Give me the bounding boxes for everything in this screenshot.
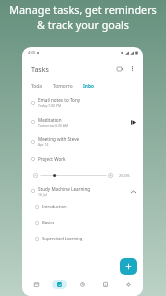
button[interactable]: Supervised Learning: [22, 231, 143, 247]
staticText: Today 7:00 PM: [38, 103, 62, 108]
staticText: Meeting with Steve: [38, 136, 80, 142]
staticText: 4:05: [28, 50, 36, 55]
staticText: 16 Jul: [38, 192, 47, 197]
button[interactable]: Start timer: [128, 117, 139, 128]
button[interactable]: Study Machine Learning: [22, 183, 143, 199]
button[interactable]: Inbox: [83, 80, 96, 92]
button[interactable]: Decrease progress: [32, 172, 38, 178]
button[interactable]: Tomorrow: [53, 80, 73, 92]
staticText: Apr 14: [38, 142, 49, 147]
staticText: 25.0%: [119, 173, 130, 178]
button[interactable]: Settings: [117, 272, 140, 296]
staticText: Supervised Learning: [42, 236, 83, 242]
staticText: Today: [31, 83, 43, 92]
button[interactable]: Today: [31, 80, 43, 92]
button[interactable]: Timer: [71, 272, 94, 296]
button[interactable]: Tasks: [48, 272, 71, 296]
button[interactable]: Collapse: [128, 186, 139, 197]
staticText: Project Work: [38, 156, 66, 162]
staticText: Email notes to Tony: [38, 97, 81, 103]
button[interactable]: Increase progress: [107, 172, 113, 178]
staticText: Meditation: [38, 117, 62, 123]
staticText: Manage tasks, get reminders: [9, 2, 157, 17]
button[interactable]: Basics: [22, 215, 143, 231]
button[interactable]: Calendar: [25, 272, 48, 296]
button[interactable]: Meeting with Steve: [22, 132, 143, 151]
button[interactable]: Email notes to Tony: [22, 93, 143, 112]
staticText: Tomorrow 6:30 AM: [38, 123, 69, 128]
button[interactable]: Add task: [120, 258, 137, 275]
button[interactable]: Meditation: [22, 112, 143, 132]
button[interactable]: Switch view: [114, 63, 125, 74]
staticText: Inbox: [83, 83, 96, 92]
button[interactable]: Notes: [94, 272, 117, 296]
staticText: Study Machine Learning: [38, 186, 91, 192]
staticText: & track your goals: [37, 17, 129, 32]
button[interactable]: Project Work: [22, 151, 143, 167]
staticText: Basics: [42, 220, 55, 226]
staticText: Introduction: [42, 204, 67, 210]
button[interactable]: More options: [127, 63, 138, 74]
staticText: Tomorrow: [53, 83, 73, 92]
button[interactable]: Introduction: [22, 199, 143, 215]
staticText: Tasks: [31, 64, 49, 74]
